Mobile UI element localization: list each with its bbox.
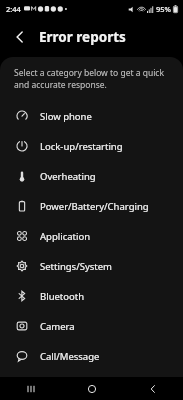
staticText: 95% [156,4,171,14]
button[interactable]: Power/Battery/Charging [0,191,183,221]
staticText: Application [40,230,91,243]
button[interactable]: Accessory [0,371,183,400]
button[interactable]: Home [61,377,122,400]
button[interactable]: Bluetooth [0,281,183,311]
button[interactable]: Camera [0,311,183,341]
button[interactable]: Call/Message [0,341,183,371]
staticText: Select a category below to get a quick a… [14,67,165,91]
staticText: Camera [40,320,75,333]
button[interactable]: Settings/System [0,251,183,281]
staticText: Slow phone [40,110,92,123]
button[interactable]: Recent apps [0,377,61,400]
staticText: Lock-up/restarting [40,140,123,153]
staticText: Power/Battery/Charging [40,200,149,213]
staticText: 2:44 [6,4,21,14]
staticText: Settings/System [40,260,112,273]
button[interactable]: Back [8,25,32,49]
button[interactable]: Slow phone [0,101,183,131]
button[interactable]: Application [0,221,183,251]
button[interactable]: Overheating [0,161,183,191]
button[interactable]: Back [122,377,183,400]
staticText: Bluetooth [40,290,85,303]
staticText: Error reports [39,28,126,46]
staticText: Overheating [40,170,96,183]
button[interactable]: Lock-up/restarting [0,131,183,161]
staticText: Call/Message [40,350,100,363]
